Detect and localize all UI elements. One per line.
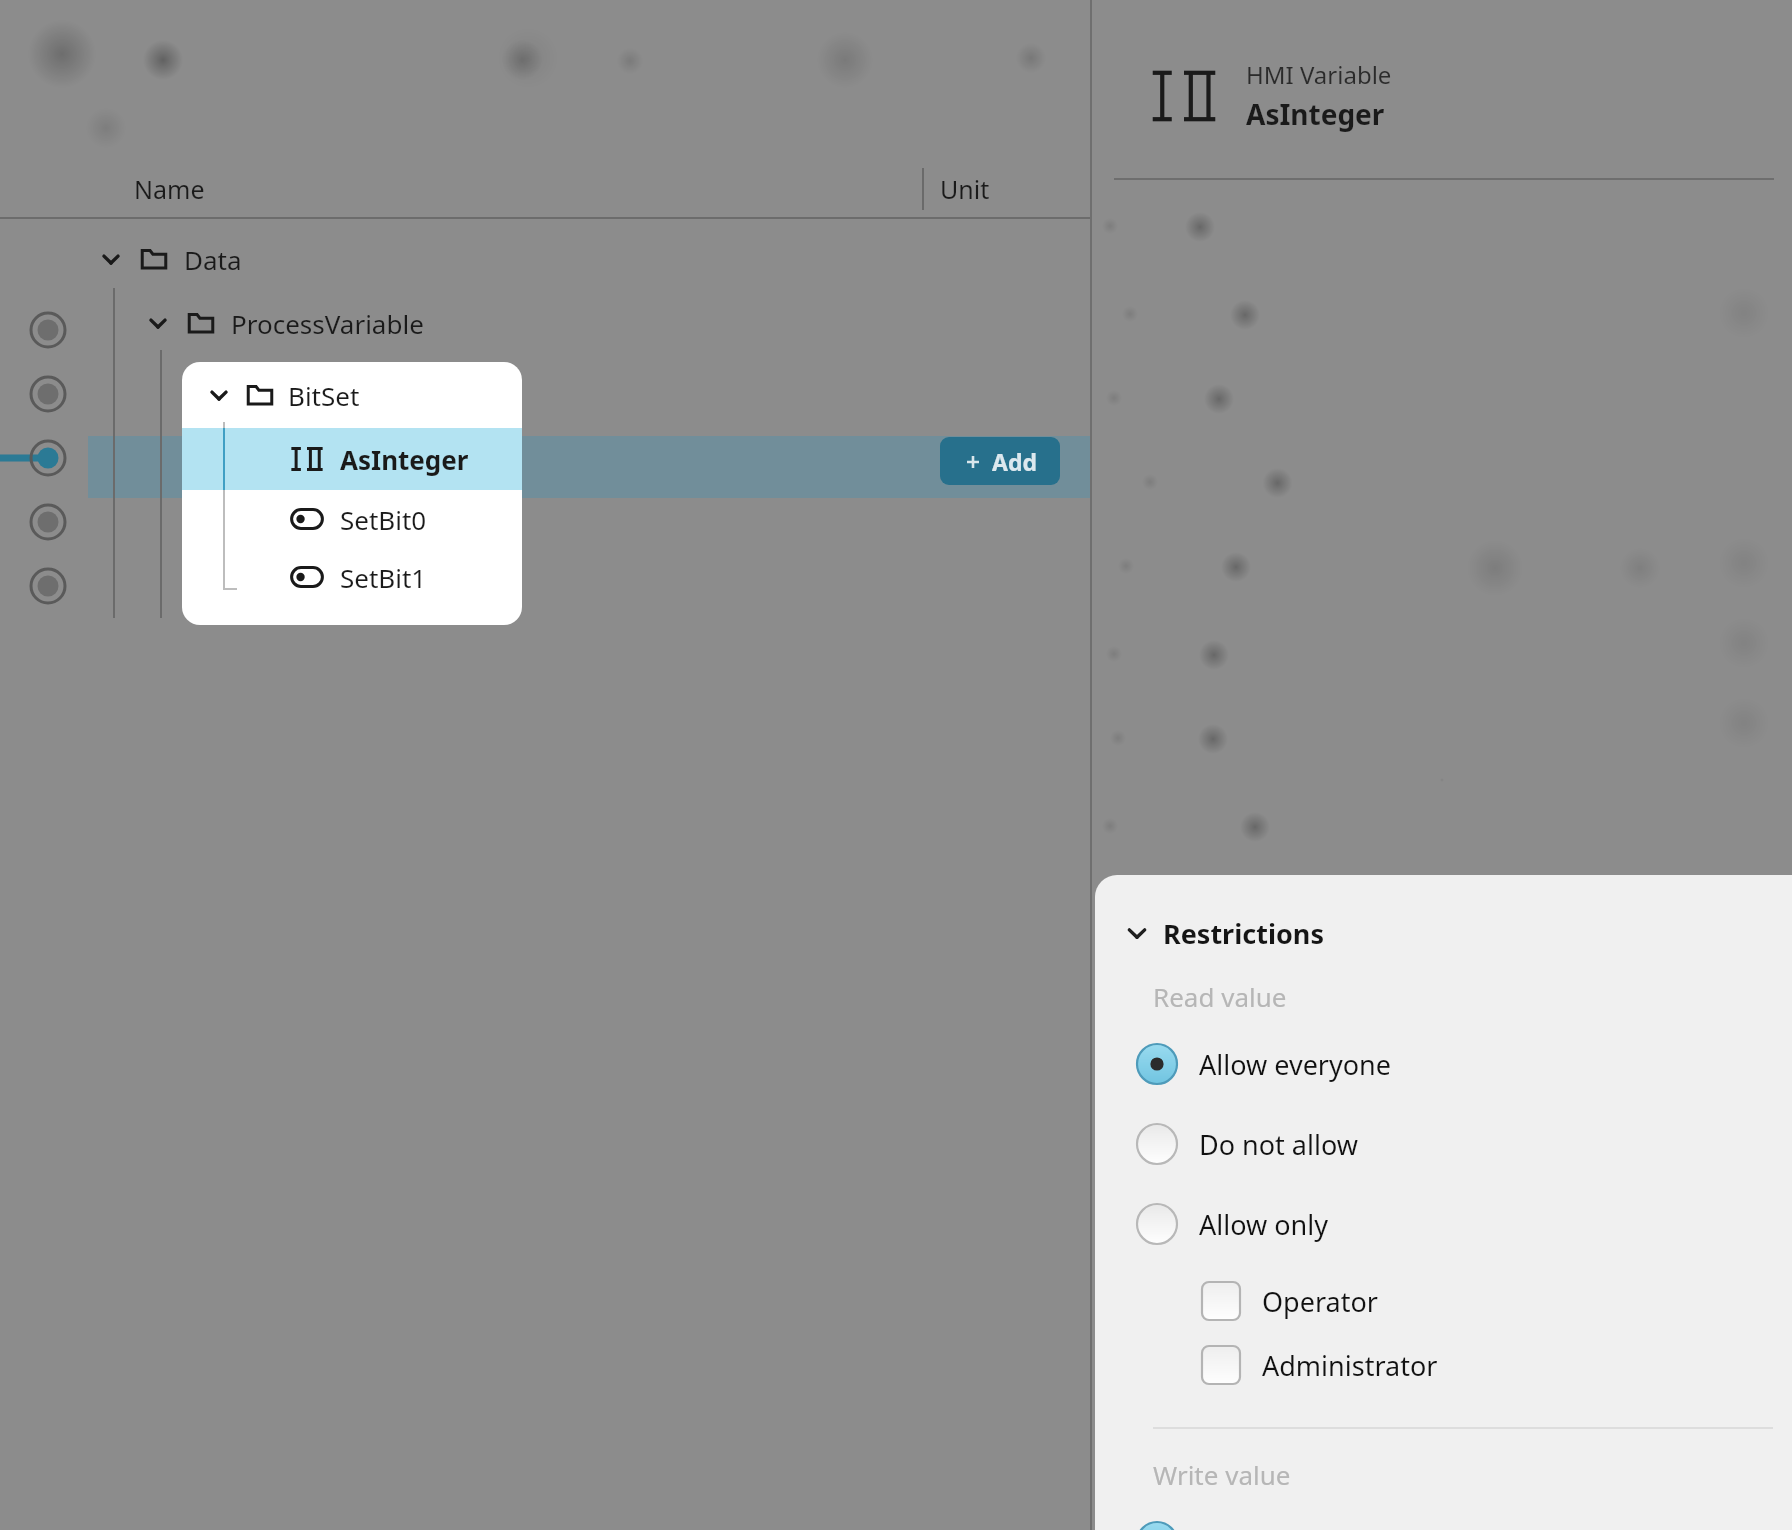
button[interactable]: Allow everyone [1135,1513,1695,1530]
button[interactable]: Allow only [1135,1195,1695,1253]
staticText: Administrator [1262,1347,1438,1384]
button[interactable]: Connection point [0,502,96,542]
staticText: Operator [1262,1283,1378,1320]
staticText: Unit [940,172,990,206]
button[interactable]: Restrictions [1125,911,1385,955]
button[interactable]: Data [0,232,1090,286]
staticText: Data [184,242,242,277]
button[interactable]: Allow everyone [1135,1035,1695,1093]
staticText: BitSet [288,378,360,413]
button[interactable]: Do not allow [1135,1115,1695,1173]
staticText: Allow only [1199,1206,1328,1243]
button[interactable]: Add [940,437,1060,485]
button[interactable]: Connection point [0,566,96,606]
button[interactable]: Connection point [0,374,96,414]
staticText: Restrictions [1163,915,1324,952]
staticText: HMI Variable [1246,58,1392,91]
staticText: SetBit1 [340,560,427,595]
staticText: SetBit0 [340,502,427,537]
staticText: AsInteger [1246,95,1385,133]
staticText: ProcessVariable [231,306,424,341]
button[interactable]: Administrator [1200,1337,1700,1393]
button[interactable]: ProcessVariable [0,296,1090,350]
button[interactable]: SetBit1 [182,548,522,606]
staticText: Write value [1153,1457,1291,1492]
button[interactable]: AsInteger [182,428,522,490]
staticText: Add [992,446,1037,477]
staticText: AsInteger [340,442,469,477]
staticText: Name [134,172,205,206]
button[interactable]: Connection point [0,310,96,350]
button[interactable]: SetBit0 [182,490,522,548]
button[interactable]: Operator [1200,1273,1700,1329]
button[interactable]: BitSet [182,362,522,428]
staticText: Allow everyone [1199,1046,1392,1083]
staticText: Read value [1153,979,1287,1014]
staticText: Do not allow [1199,1126,1358,1163]
button[interactable]: Connected point [0,438,96,478]
